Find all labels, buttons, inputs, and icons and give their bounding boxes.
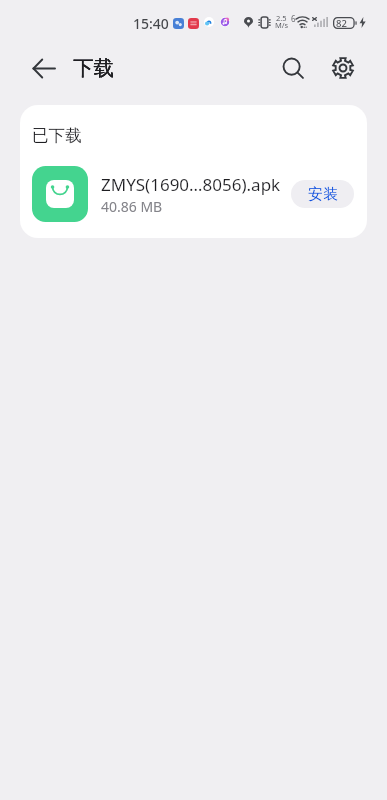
staticText: 下载	[73, 55, 114, 81]
staticText: 已下载	[32, 125, 82, 146]
button[interactable]: Search	[275, 50, 311, 86]
button[interactable]: ZMYS(1690…8056).apk	[20, 166, 367, 222]
staticText: M/s	[275, 20, 289, 30]
staticText: 安装	[308, 185, 338, 204]
button[interactable]: Settings	[325, 50, 361, 86]
staticText: 下载	[73, 55, 114, 81]
staticText: 40.86 MB	[101, 197, 163, 216]
staticText: 2.5	[276, 13, 287, 23]
staticText: 15:40	[133, 14, 169, 33]
staticText: 82	[336, 17, 347, 30]
button[interactable]: 安装	[291, 180, 354, 208]
staticText: 下载	[73, 55, 114, 81]
staticText: 下载	[73, 55, 114, 81]
staticText: 6	[291, 13, 296, 24]
staticText: ZMYS(1690…8056).apk	[101, 173, 281, 196]
button[interactable]: Back	[26, 50, 62, 86]
